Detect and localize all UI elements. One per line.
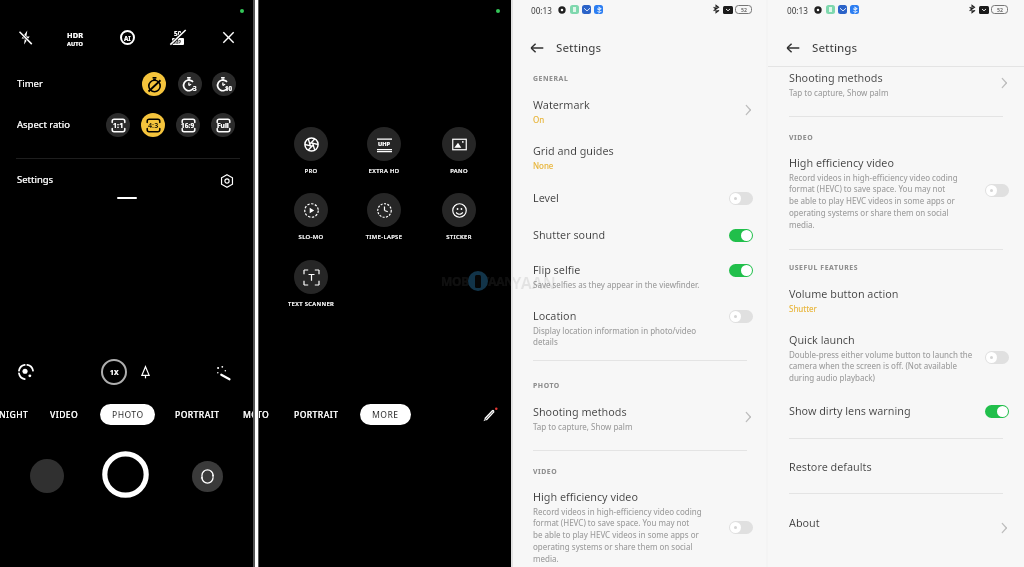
button[interactable]: Enabled — [729, 264, 753, 277]
button[interactable]: VIDEO — [44, 404, 84, 425]
button[interactable]: Focus mode — [14, 360, 38, 384]
button[interactable]: Shutter — [102, 451, 149, 498]
button[interactable]: Disabled — [985, 184, 1009, 197]
button[interactable]: PRO — [278, 127, 344, 175]
button[interactable]: HDR auto — [61, 25, 89, 53]
staticText: STICKER — [426, 233, 492, 241]
button[interactable]: Beauty — [133, 360, 157, 384]
button[interactable] — [768, 150, 1024, 240]
button[interactable]: Close — [216, 25, 240, 49]
staticText: Tap to capture, Show palm — [789, 87, 889, 98]
staticText: SLO-MO — [278, 233, 344, 241]
button[interactable] — [512, 298, 768, 348]
button[interactable] — [512, 218, 768, 252]
staticText: High efficiency video — [533, 489, 638, 504]
button[interactable] — [768, 281, 1024, 320]
button[interactable]: Flash off — [13, 25, 37, 49]
button[interactable]: Aspect ratio 4:3 — [141, 113, 165, 137]
button[interactable]: Aspect ratio 1:1 — [106, 113, 130, 137]
button[interactable] — [768, 506, 1024, 544]
staticText: 3 — [193, 84, 197, 92]
button[interactable]: Enabled — [985, 405, 1009, 418]
staticText: Timer — [17, 77, 43, 90]
button[interactable]: Back — [781, 36, 805, 60]
staticText: 52 — [997, 6, 1003, 13]
button[interactable]: Gallery — [30, 459, 64, 493]
staticText: AI — [124, 34, 131, 42]
staticText: UHP — [378, 140, 390, 148]
button[interactable]: 50 MP off — [166, 25, 190, 49]
staticText: Flip selfie — [533, 262, 581, 277]
staticText: MP — [174, 39, 182, 45]
button[interactable]: Timer 3 seconds — [178, 72, 202, 96]
button[interactable]: AI scene detection — [115, 25, 139, 49]
button[interactable]: TEXT SCANNER — [278, 260, 344, 308]
staticText: PRO — [278, 167, 344, 175]
staticText: EXTRA HD — [351, 167, 417, 175]
staticText: Display location information in photo/vi… — [533, 325, 713, 348]
button[interactable]: PORTRAIT — [168, 404, 226, 425]
button[interactable] — [768, 67, 1024, 104]
button[interactable]: SLO-MO — [278, 193, 344, 241]
staticText: 1:1 — [113, 120, 124, 130]
button[interactable] — [512, 482, 768, 567]
button[interactable]: UHP — [351, 127, 417, 175]
staticText: TO — [257, 409, 270, 421]
staticText: Shooting methods — [789, 70, 883, 85]
staticText: PANO — [426, 167, 492, 175]
button[interactable] — [768, 394, 1024, 430]
staticText: Watermark — [533, 97, 590, 112]
staticText: Restore defaults — [789, 459, 872, 474]
button[interactable]: PHOTO — [100, 404, 155, 425]
button[interactable] — [512, 182, 768, 216]
staticText: GENERAL — [533, 74, 569, 83]
staticText: Double-press either volume button to lau… — [789, 349, 973, 384]
staticText: Show dirty lens warning — [789, 403, 911, 418]
staticText: Tap to capture, Show palm — [533, 421, 633, 432]
button[interactable]: Disabled — [729, 521, 753, 534]
staticText: VIDEO — [789, 133, 814, 142]
staticText: USEFUL FEATURES — [789, 263, 859, 272]
staticText: Level — [533, 190, 559, 205]
button[interactable]: Back — [525, 36, 549, 60]
staticText: 10 — [225, 84, 233, 92]
button[interactable]: Effects — [211, 360, 235, 384]
button[interactable]: TIME-LAPSE — [351, 193, 417, 241]
button[interactable] — [768, 450, 1024, 488]
button[interactable]: Timer 10 seconds — [212, 72, 236, 96]
staticText: Settings — [17, 173, 54, 186]
button[interactable]: Aspect ratio 16:9 — [176, 113, 200, 137]
button[interactable]: PANO — [426, 127, 492, 175]
button[interactable]: MORE — [243, 404, 270, 425]
staticText: Save selfies as they appear in the viewf… — [533, 279, 700, 290]
button[interactable]: Aspect ratio Full — [211, 113, 235, 137]
button[interactable] — [0, 167, 256, 193]
button[interactable] — [768, 326, 1024, 390]
button[interactable]: Disabled — [985, 351, 1009, 364]
staticText: Location — [533, 308, 577, 323]
button[interactable] — [512, 138, 768, 176]
button[interactable]: NIGHT — [0, 404, 34, 425]
button[interactable] — [512, 254, 768, 292]
button[interactable]: MORE — [360, 404, 411, 425]
button[interactable]: Disabled — [729, 192, 753, 205]
staticText: MORE — [372, 409, 399, 421]
staticText: Settings — [556, 40, 602, 56]
button[interactable]: 1X — [101, 359, 127, 385]
button[interactable]: PORTRAIT — [287, 404, 345, 425]
staticText: PORTRAIT — [294, 409, 339, 421]
button[interactable]: STICKER — [426, 193, 492, 241]
button[interactable] — [512, 398, 768, 438]
button[interactable]: Edit modes — [478, 404, 500, 425]
button[interactable] — [512, 92, 768, 130]
staticText: VIDEO — [533, 467, 558, 476]
staticText: TIME-LAPSE — [351, 233, 417, 241]
button[interactable]: Disabled — [729, 310, 753, 323]
staticText: Volume button action — [789, 286, 899, 301]
staticText: About — [789, 515, 820, 530]
button[interactable]: Enabled — [729, 229, 753, 242]
staticText: NIGHT — [0, 409, 29, 421]
staticText: Record videos in high-efficiency video c… — [789, 172, 958, 231]
button[interactable]: Switch camera — [192, 461, 223, 492]
button[interactable]: Timer option — [142, 72, 166, 96]
